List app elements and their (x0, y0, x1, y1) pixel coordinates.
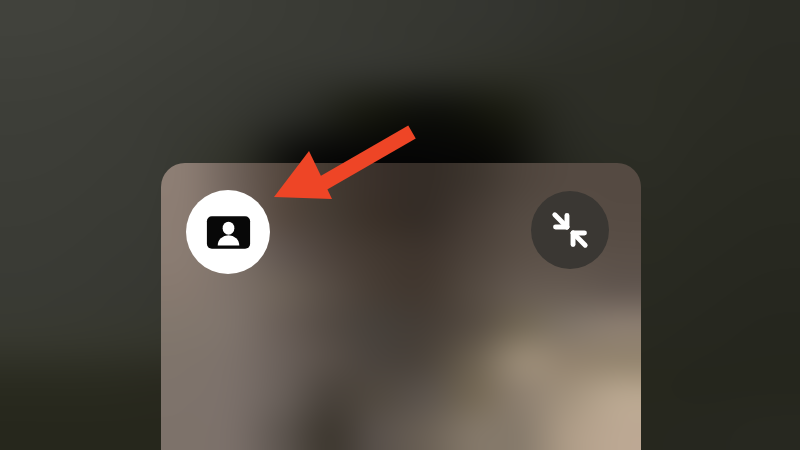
button[interactable]: Open contact card (186, 190, 270, 274)
button[interactable]: Collapse self view (531, 191, 609, 269)
